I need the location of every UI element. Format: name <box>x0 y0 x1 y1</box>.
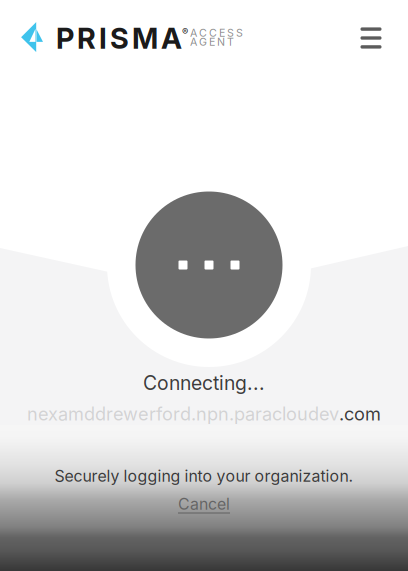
staticText: N <box>217 35 225 48</box>
staticText: M <box>132 21 158 56</box>
button[interactable]: Menu <box>349 16 393 60</box>
staticText: A <box>190 26 197 39</box>
staticText: G <box>199 35 207 48</box>
staticText: ® <box>182 26 188 37</box>
staticText: P <box>56 21 74 56</box>
staticText: C <box>209 26 217 39</box>
staticText: E <box>219 26 225 39</box>
staticText: nexamddrewerford.npn.paracloudev <box>27 403 339 425</box>
staticText: C <box>199 26 207 39</box>
staticText: Securely logging into your organization. <box>54 466 353 486</box>
staticText: S <box>227 26 234 39</box>
staticText: E <box>209 35 215 48</box>
button[interactable]: Cancel <box>169 492 239 516</box>
staticText: R <box>77 21 96 56</box>
staticText: A <box>161 21 182 56</box>
staticText: Connecting... <box>143 371 265 395</box>
staticText: S <box>110 21 129 56</box>
staticText: Cancel <box>178 494 230 514</box>
staticText: A <box>190 35 197 48</box>
staticText: S <box>236 26 243 39</box>
staticText: T <box>227 35 234 48</box>
staticText: I <box>99 21 107 56</box>
staticText: .com <box>339 403 381 425</box>
